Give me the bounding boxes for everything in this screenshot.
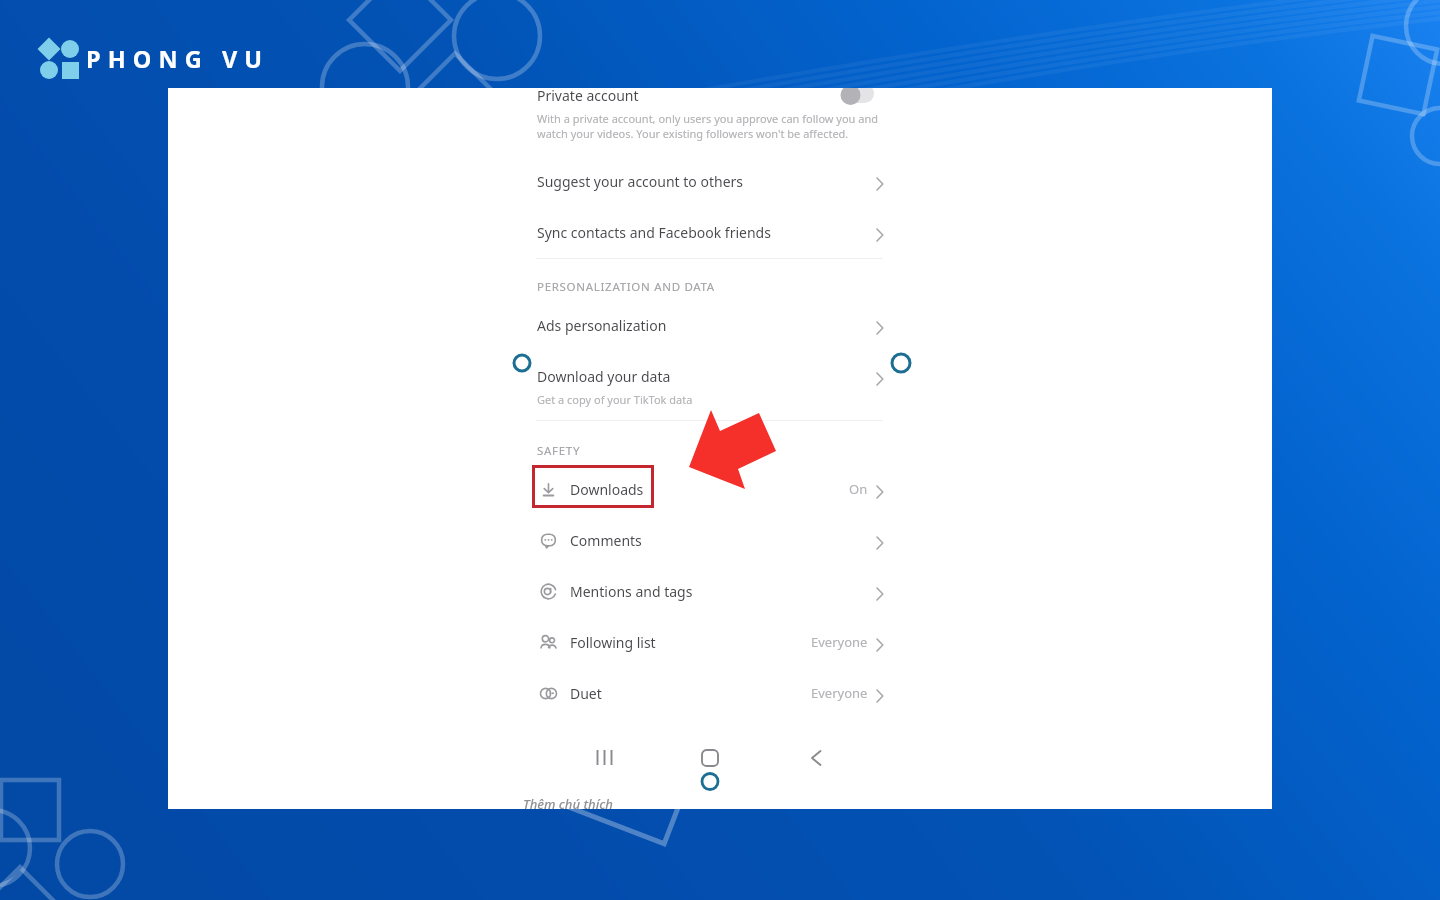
staticText: Download your data	[537, 367, 671, 386]
button[interactable]: Following list	[537, 625, 885, 659]
button[interactable]: Suggest your account to others	[537, 164, 885, 198]
staticText: Following list	[570, 633, 656, 652]
button[interactable]: Recent apps	[586, 740, 624, 776]
staticText: Private account	[537, 88, 639, 105]
button[interactable]: Download your data	[537, 359, 885, 393]
staticText: With a private account, only users you a…	[537, 111, 878, 126]
staticText: Duet	[570, 684, 602, 703]
staticText: Thêm chú thích	[523, 795, 613, 809]
button[interactable]: Downloads	[537, 472, 885, 506]
staticText: Everyone	[811, 684, 868, 702]
staticText: Sync contacts and Facebook friends	[537, 223, 771, 242]
button[interactable]: Phong Vu logo	[36, 34, 266, 82]
staticText: SAFETY	[537, 443, 581, 459]
staticText: Get a copy of your TikTok data	[537, 392, 693, 407]
staticText: Everyone	[811, 633, 868, 651]
staticText: Suggest your account to others	[537, 172, 744, 191]
button[interactable]: Sync contacts and Facebook friends	[537, 215, 885, 249]
staticText: Ads personalization	[537, 316, 667, 335]
button[interactable]: Private account	[537, 88, 639, 105]
staticText: Mentions and tags	[570, 582, 693, 601]
button[interactable]: Duet	[537, 676, 885, 710]
button[interactable]: Back	[797, 740, 835, 776]
staticText: PERSONALIZATION AND DATA	[537, 279, 715, 295]
button[interactable]: Private account toggle	[836, 88, 878, 108]
staticText: On	[849, 480, 868, 498]
staticText: PHONG VU	[86, 43, 270, 75]
button[interactable]: Mentions and tags	[537, 574, 885, 608]
staticText: Comments	[570, 531, 642, 550]
button[interactable]: Ads personalization	[537, 308, 885, 342]
staticText: watch your videos. Your existing followe…	[537, 126, 849, 141]
staticText: Downloads	[570, 480, 644, 499]
button[interactable]: Home	[691, 740, 729, 776]
button[interactable]: Comments	[537, 523, 885, 557]
